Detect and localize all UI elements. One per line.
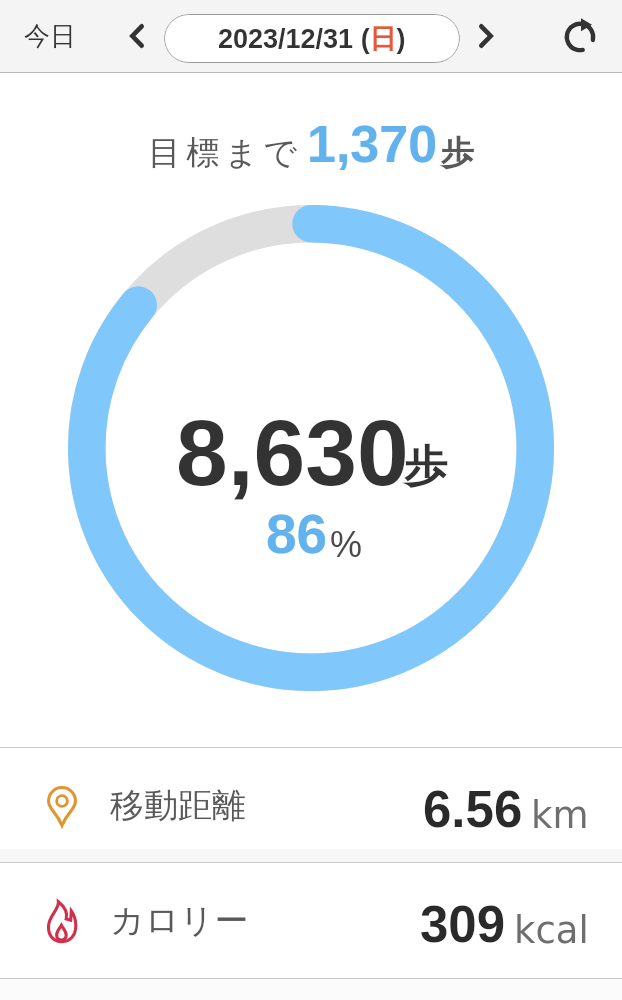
button[interactable]: 2023/12/31 (日) — [164, 14, 460, 63]
staticText: 86 — [266, 503, 328, 563]
staticText: 目標まで — [148, 132, 303, 174]
staticText: kcal — [514, 909, 589, 952]
button[interactable]: カロリー — [0, 863, 622, 978]
button[interactable]: Next day — [465, 16, 507, 56]
button[interactable]: Previous day — [116, 16, 158, 56]
staticText: 移動距離 — [110, 784, 246, 827]
button[interactable]: Refresh — [558, 14, 602, 58]
staticText: 309 — [420, 896, 506, 953]
staticText: % — [330, 524, 363, 564]
staticText: 8,630 — [176, 401, 409, 501]
button[interactable]: 移動距離 — [0, 748, 622, 849]
button[interactable]: 今日 — [10, 11, 90, 61]
staticText: km — [531, 794, 589, 837]
staticText: 歩 — [441, 132, 474, 174]
staticText: 6.56 — [423, 781, 523, 838]
staticText: カロリー — [110, 899, 249, 942]
staticText: 歩 — [404, 440, 447, 494]
staticText: 1,370 — [307, 115, 438, 173]
staticText: 今日 — [24, 20, 76, 53]
staticText: 2023/12/31 (日) — [218, 22, 406, 56]
